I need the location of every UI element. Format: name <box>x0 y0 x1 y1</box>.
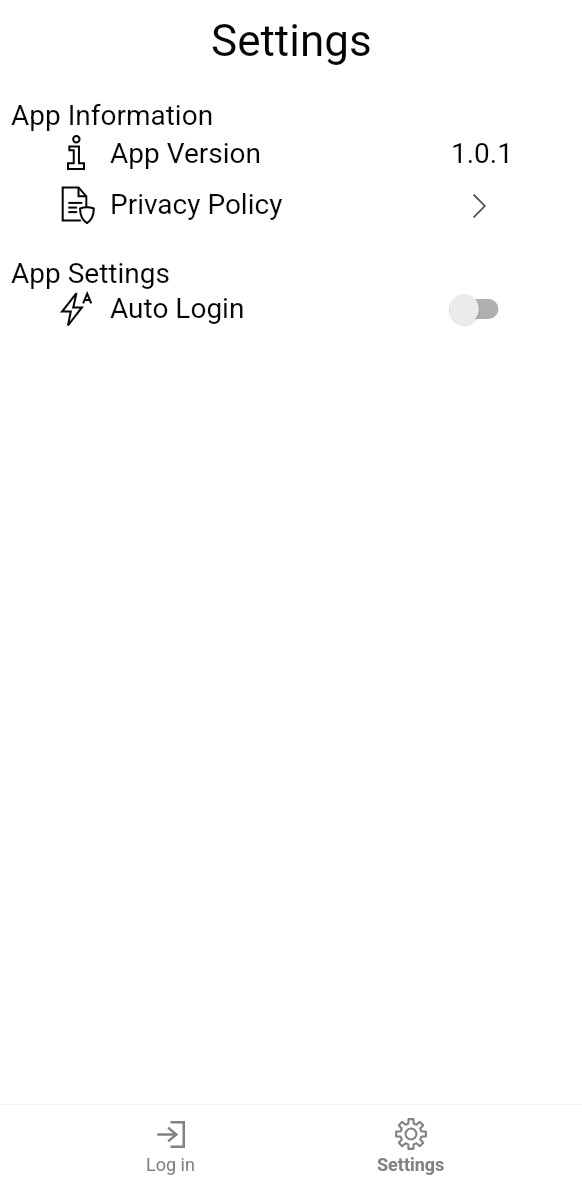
button[interactable]: Auto Login <box>0 282 582 333</box>
staticText: Settings <box>211 15 372 67</box>
staticText: Log in <box>146 1154 195 1175</box>
staticText: App Settings <box>11 257 170 290</box>
button[interactable]: Settings <box>341 1105 481 1186</box>
staticText: App Version <box>110 137 261 170</box>
other: Log in <box>156 1121 185 1148</box>
other: Open privacy policy <box>473 194 486 218</box>
staticText: App Information <box>11 99 214 132</box>
button[interactable]: Auto Login toggle <box>446 293 498 325</box>
button[interactable]: Log in <box>100 1105 240 1186</box>
staticText: Settings <box>377 1154 445 1175</box>
other: Settings <box>395 1118 427 1150</box>
staticText: Auto Login <box>110 292 245 325</box>
staticText: 1.0.1 <box>451 137 513 170</box>
button[interactable]: Settings <box>211 15 372 67</box>
button[interactable]: App Version <box>0 127 582 178</box>
staticText: Privacy Policy <box>110 188 283 221</box>
button[interactable]: Privacy Policy <box>0 178 582 229</box>
